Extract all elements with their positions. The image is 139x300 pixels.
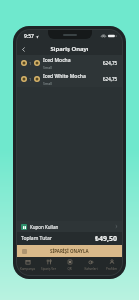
button[interactable]: Sipariş Ver [38,257,59,275]
staticText: 1 [29,61,32,66]
staticText: Sipariş Ver [41,267,56,271]
button[interactable]: 1 [17,71,122,87]
staticText: Kupon Kullan [30,224,115,230]
staticText: QR [67,267,72,271]
staticText: 1 [29,77,32,82]
button[interactable]: Kampanya [17,257,38,275]
staticText: ₺24,75 [103,60,118,66]
button[interactable]: Back [17,43,29,55]
button[interactable]: Kahveleri [80,257,101,275]
button[interactable]: QR [59,257,80,275]
staticText: Iced White Mocha [43,73,86,80]
button[interactable]: Kupon Kullan [17,221,122,232]
button[interactable]: Profilim [101,257,122,275]
staticText: Small [43,65,52,70]
staticText: Toplam Tutar [21,235,95,242]
staticText: SİPARİŞİ ONAYLA [50,248,89,254]
button[interactable]: SİPARİŞİ ONAYLA [17,245,122,257]
staticText: ₺49,50 [95,234,118,244]
staticText: 9:57 [24,33,34,40]
staticText: Small [43,81,52,86]
button[interactable]: 1 [17,55,122,71]
staticText: Sipariş Onayı [50,45,89,53]
staticText: Kampanya [20,267,35,271]
staticText: Profilim [106,267,117,271]
staticText: Kahveleri [84,267,98,271]
staticText: ₺24,75 [103,76,118,82]
staticText: Iced Mocha [43,57,71,64]
